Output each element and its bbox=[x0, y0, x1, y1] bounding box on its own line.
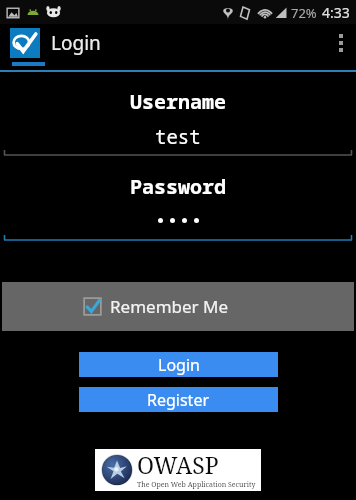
staticText: Remember Me bbox=[110, 295, 229, 318]
staticText: Username bbox=[130, 88, 226, 115]
staticText: Register bbox=[147, 389, 210, 411]
staticText: test bbox=[155, 124, 201, 146]
staticText: 4:33 bbox=[322, 3, 350, 22]
button[interactable]: More options bbox=[326, 24, 356, 62]
button[interactable]: Password bbox=[0, 173, 356, 242]
staticText: OWASP bbox=[137, 449, 219, 480]
button[interactable]: Register bbox=[79, 387, 278, 412]
staticText: The Open Web Application Security Projec… bbox=[137, 480, 261, 491]
button[interactable]: Username bbox=[0, 88, 356, 157]
button[interactable]: OWASP logo bbox=[95, 449, 261, 491]
button[interactable]: Login bbox=[79, 352, 278, 377]
button[interactable]: Remember Me bbox=[2, 282, 354, 331]
staticText: 72% bbox=[291, 4, 317, 22]
button[interactable]: App icon bbox=[10, 28, 40, 58]
staticText: Password bbox=[130, 173, 226, 200]
staticText: Login bbox=[51, 30, 101, 56]
staticText: Login bbox=[158, 354, 200, 376]
